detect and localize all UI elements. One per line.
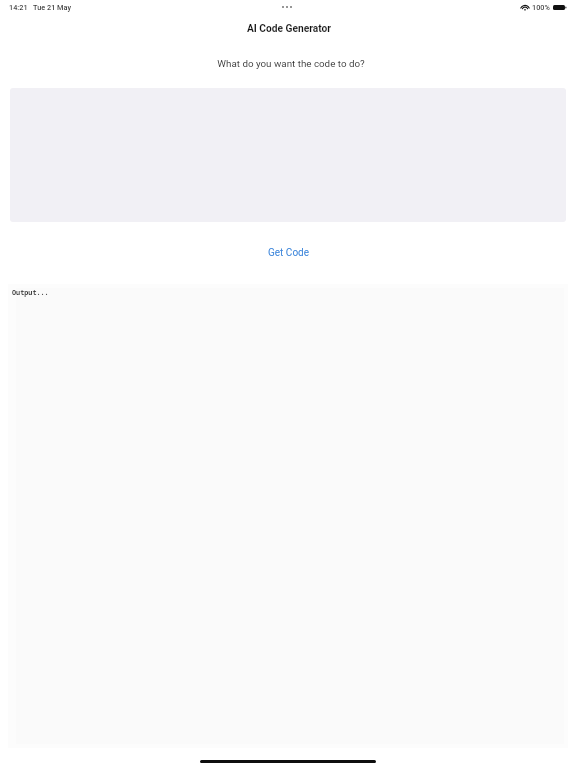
button[interactable]: Get Code <box>254 243 324 263</box>
staticText: Output... <box>12 288 49 297</box>
staticText: Tue 21 May <box>33 3 71 12</box>
staticText: 14:21 <box>9 3 28 12</box>
staticText: What do you want the code to do? <box>3 58 576 69</box>
staticText: 100% <box>532 3 550 12</box>
staticText: AI Code Generator <box>1 23 576 35</box>
staticText: Get Code <box>268 247 310 259</box>
